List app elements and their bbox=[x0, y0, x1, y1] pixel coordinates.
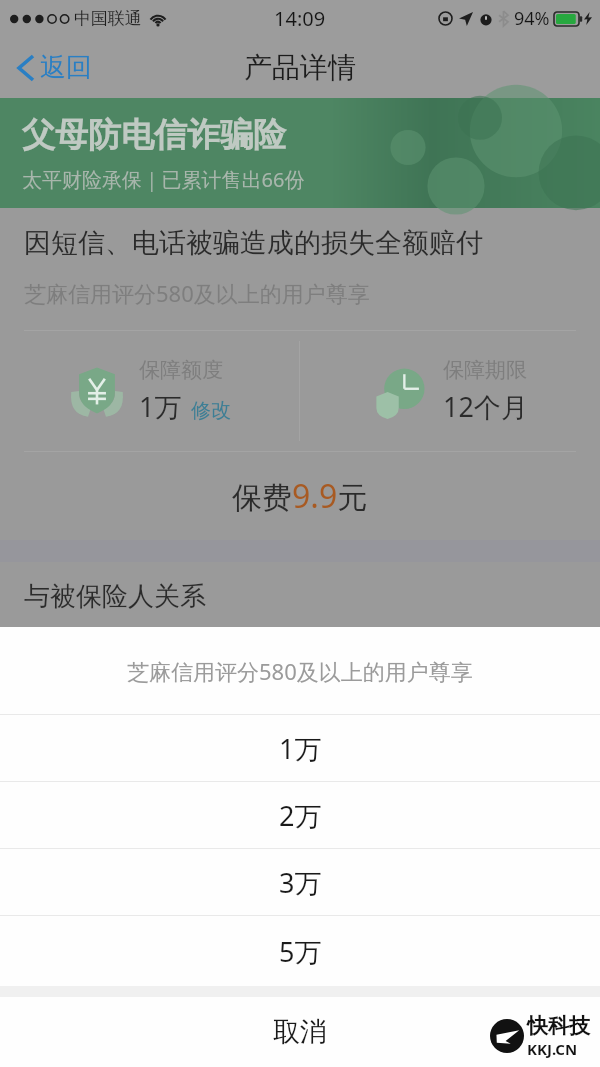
staticText: 保障期限 bbox=[443, 357, 527, 383]
staticText: 父母防电信诈骗险 bbox=[22, 114, 286, 156]
staticText: 芝麻信用评分580及以上的用户尊享 bbox=[24, 278, 370, 308]
staticText: 芝麻信用评分580及以上的用户尊享 bbox=[127, 656, 473, 686]
staticText: 94% bbox=[514, 6, 550, 31]
button[interactable]: 3万 bbox=[0, 849, 600, 915]
staticText: 1万 bbox=[279, 730, 322, 767]
button[interactable]: 2万 bbox=[0, 782, 600, 848]
staticText: 2万 bbox=[279, 797, 322, 834]
staticText: 14:09 bbox=[274, 5, 326, 32]
staticText: 快科技 bbox=[527, 1013, 590, 1039]
button[interactable]: 1万 bbox=[0, 715, 600, 781]
staticText: 中国联通 bbox=[74, 8, 142, 29]
staticText: 3万 bbox=[279, 864, 322, 901]
staticText: 取消 bbox=[273, 1015, 327, 1049]
staticText: KKJ.CN bbox=[527, 1039, 578, 1059]
button[interactable]: 返回 bbox=[0, 41, 110, 94]
button[interactable]: 取消 bbox=[0, 997, 600, 1067]
staticText: 返回 bbox=[40, 51, 92, 84]
staticText: 因短信、电话被骗造成的损失全额赔付 bbox=[24, 226, 483, 260]
button[interactable]: 5万 bbox=[0, 916, 600, 986]
staticText: 与被保险人关系 bbox=[24, 580, 206, 613]
staticText: 修改 bbox=[191, 398, 231, 423]
staticText: 1万 bbox=[139, 388, 182, 425]
button[interactable]: 修改 bbox=[191, 398, 231, 425]
staticText: 保费9.9元 bbox=[232, 474, 368, 518]
staticText: 产品详情 bbox=[244, 50, 356, 85]
staticText: 太平财险承保｜已累计售出66份 bbox=[22, 166, 305, 193]
staticText: 保障额度 bbox=[139, 357, 223, 383]
staticText: 5万 bbox=[279, 933, 322, 970]
staticText: 12个月 bbox=[443, 388, 528, 425]
